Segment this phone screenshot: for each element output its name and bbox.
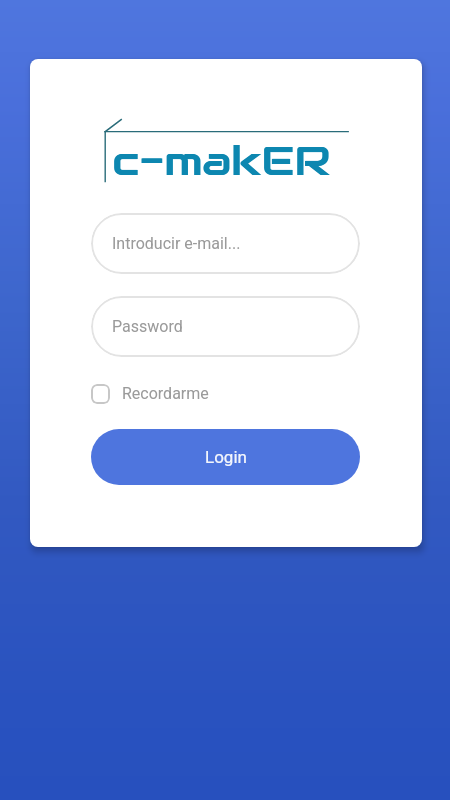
button[interactable]: Login bbox=[91, 429, 360, 485]
staticText: Password bbox=[112, 317, 183, 336]
button[interactable]: Introducir e-mail... bbox=[91, 213, 360, 274]
button[interactable]: Password bbox=[91, 296, 360, 357]
staticText: c-makER bbox=[112, 136, 331, 186]
staticText: Recordarme bbox=[122, 384, 209, 403]
button[interactable]: Recordarme bbox=[91, 378, 209, 409]
staticText: Introducir e-mail... bbox=[112, 234, 241, 253]
staticText: c-makER bbox=[113, 136, 331, 186]
staticText: Login bbox=[205, 447, 247, 467]
